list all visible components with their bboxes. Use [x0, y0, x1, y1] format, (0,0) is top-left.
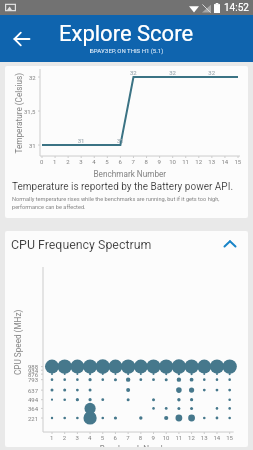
button[interactable]: Temperature is reported by the Battery p…	[5, 66, 248, 218]
staticText: 14:52	[224, 2, 249, 14]
staticText: Temperature is reported by the Battery p…	[12, 181, 234, 193]
button[interactable]: Back	[6, 23, 38, 55]
button[interactable]: Collapse	[218, 232, 242, 256]
staticText: Normally temperature rises while the ben…	[12, 196, 220, 210]
staticText: CPU Frequency Spectrum	[11, 237, 152, 252]
staticText: БРАУЗЕР, ON THIS H1 (5.1)	[90, 47, 164, 54]
staticText: Explore Score	[59, 21, 194, 47]
button[interactable]: CPU Frequency Spectrum	[5, 231, 248, 257]
